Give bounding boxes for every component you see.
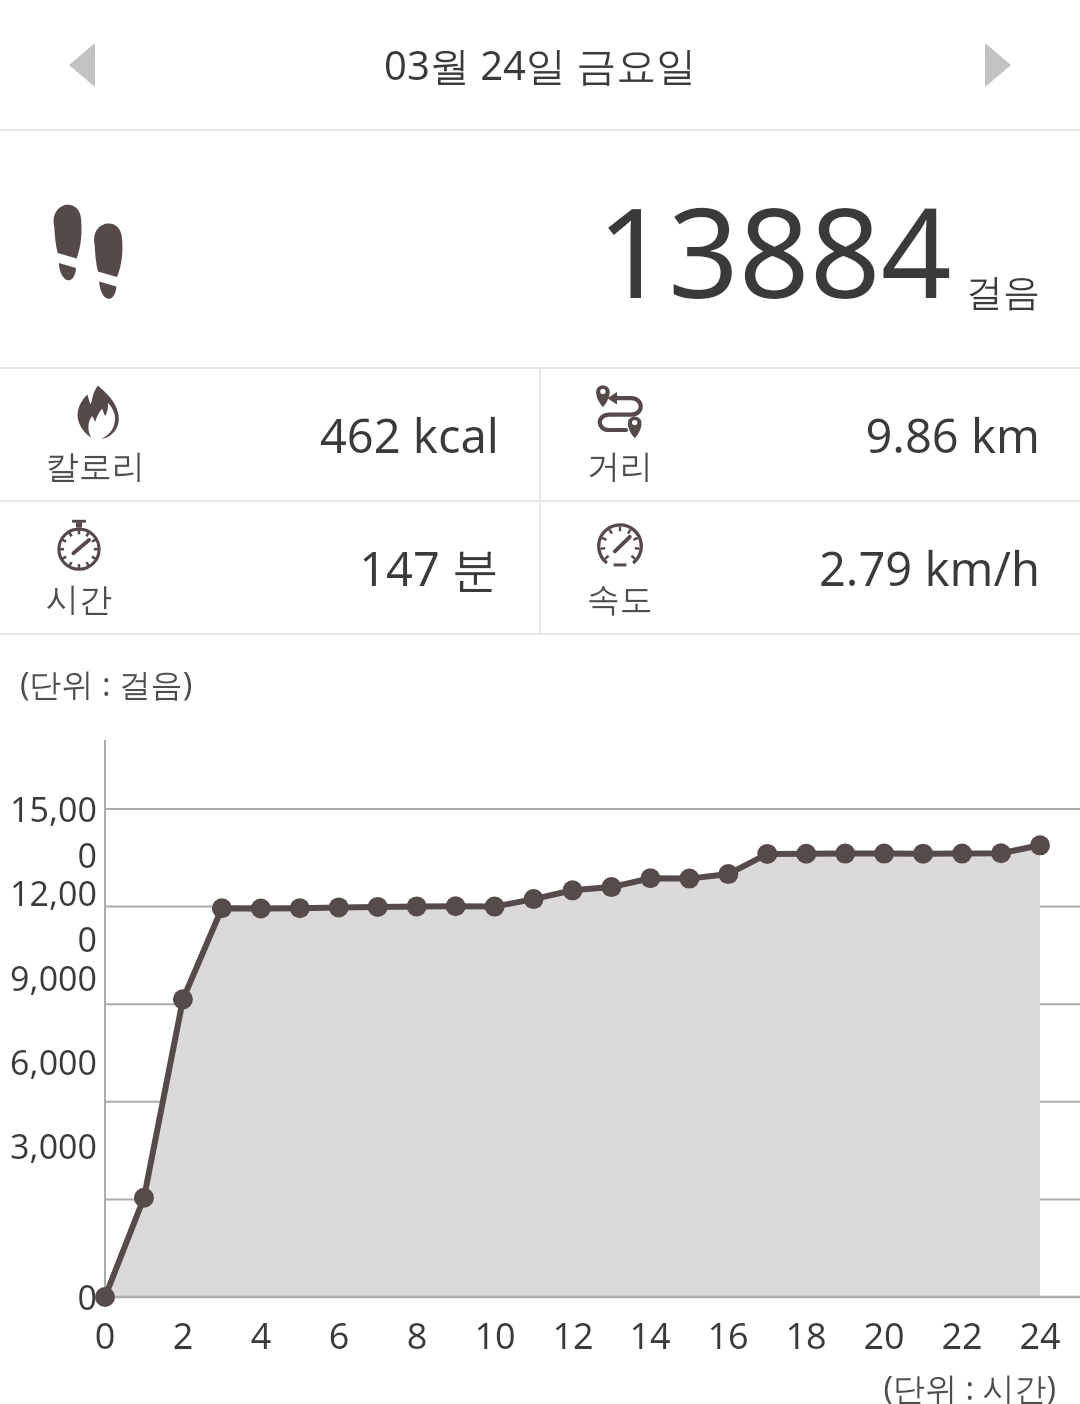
- button[interactable]: Next day: [960, 27, 1036, 103]
- button[interactable]: 13884: [0, 131, 1080, 367]
- staticText: 4: [229, 1311, 293, 1360]
- staticText: 15,000: [0, 786, 97, 878]
- button[interactable]: 속도: [541, 502, 1080, 633]
- button[interactable]: 칼로리: [0, 369, 539, 500]
- staticText: 0: [73, 1311, 137, 1360]
- staticText: 462 kcal: [150, 403, 499, 467]
- button[interactable]: 거리: [541, 369, 1080, 500]
- staticText: 8: [385, 1311, 449, 1360]
- staticText: 2: [151, 1311, 215, 1360]
- staticText: 걸음: [966, 269, 1040, 316]
- staticText: 거리: [587, 446, 653, 488]
- staticText: 3,000: [0, 1123, 97, 1169]
- staticText: 22: [930, 1311, 994, 1360]
- staticText: 12,000: [0, 870, 97, 962]
- staticText: 시간: [46, 579, 112, 621]
- staticText: 9.86 km: [691, 403, 1040, 467]
- staticText: 18: [774, 1311, 838, 1360]
- staticText: 2.79 km/h: [691, 536, 1040, 600]
- staticText: 24: [1008, 1311, 1072, 1360]
- staticText: 6: [307, 1311, 371, 1360]
- staticText: 20: [852, 1311, 916, 1360]
- button[interactable]: Previous day: [44, 27, 120, 103]
- staticText: (단위 : 걸음): [20, 662, 193, 706]
- staticText: 147 분: [150, 536, 499, 600]
- staticText: 12: [541, 1311, 605, 1360]
- staticText: 10: [463, 1311, 527, 1360]
- staticText: 16: [696, 1311, 760, 1360]
- staticText: 13884: [597, 165, 952, 334]
- staticText: 14: [618, 1311, 682, 1360]
- staticText: 속도: [587, 579, 653, 621]
- staticText: 03월 24일 금요일: [384, 37, 697, 92]
- staticText: 칼로리: [46, 446, 145, 488]
- staticText: 6,000: [0, 1039, 97, 1085]
- staticText: 0: [0, 1274, 97, 1320]
- button[interactable]: 시간: [0, 502, 539, 633]
- staticText: 9,000: [0, 955, 97, 1001]
- staticText: (단위 : 시간): [740, 1366, 1056, 1404]
